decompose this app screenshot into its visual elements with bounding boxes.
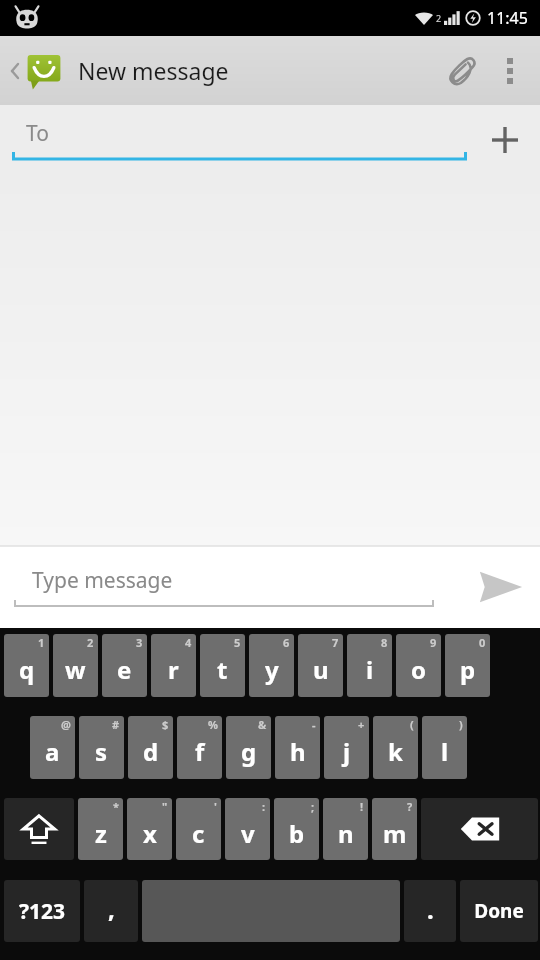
- staticText: j: [343, 735, 351, 768]
- staticText: v: [241, 817, 255, 850]
- button[interactable]: l: [422, 716, 467, 779]
- staticText: &: [258, 717, 267, 732]
- staticText: m: [383, 817, 407, 850]
- staticText: .: [427, 893, 434, 926]
- staticText: 4: [185, 635, 192, 650]
- button[interactable]: o: [396, 634, 441, 697]
- button[interactable]: i: [347, 634, 392, 697]
- staticText: #: [112, 717, 120, 732]
- button[interactable]: a: [30, 716, 75, 779]
- staticText: To: [26, 119, 49, 148]
- button[interactable]: w: [53, 634, 98, 697]
- staticText: n: [338, 817, 354, 850]
- staticText: 5: [234, 635, 241, 650]
- button[interactable]: y: [249, 634, 294, 697]
- button[interactable]: d: [128, 716, 173, 779]
- button[interactable]: c: [176, 798, 221, 860]
- staticText: @: [61, 717, 71, 732]
- button[interactable]: r: [151, 634, 196, 697]
- staticText: l: [441, 735, 449, 768]
- staticText: ?123: [19, 897, 66, 926]
- staticText: 7: [332, 635, 339, 650]
- button[interactable]: x: [127, 798, 172, 860]
- button[interactable]: t: [200, 634, 245, 697]
- staticText: ;: [311, 799, 315, 814]
- button[interactable]: Add recipient: [470, 105, 540, 175]
- button[interactable]: e: [102, 634, 147, 697]
- staticText: k: [388, 735, 403, 768]
- staticText: x: [143, 817, 157, 850]
- staticText: g: [241, 735, 257, 768]
- staticText: *: [113, 799, 119, 814]
- staticText: %: [208, 717, 218, 732]
- staticText: f: [195, 735, 205, 768]
- staticText: a: [45, 735, 60, 768]
- staticText: -: [312, 717, 316, 732]
- button[interactable]: ?123: [4, 880, 80, 942]
- staticText: New message: [78, 55, 229, 86]
- staticText: 2: [436, 12, 442, 24]
- staticText: 6: [283, 635, 290, 650]
- staticText: s: [95, 735, 108, 768]
- button[interactable]: z: [78, 798, 123, 860]
- staticText: y: [265, 653, 279, 686]
- staticText: r: [168, 653, 179, 686]
- button[interactable]: Send: [462, 546, 540, 628]
- staticText: Done: [474, 898, 524, 924]
- button[interactable]: k: [373, 716, 418, 779]
- staticText: z: [95, 817, 107, 850]
- button[interactable]: Shift: [4, 798, 74, 860]
- staticText: 8: [381, 635, 388, 650]
- button[interactable]: More options: [490, 36, 530, 105]
- staticText: 3: [136, 635, 143, 650]
- staticText: :: [262, 799, 266, 814]
- staticText: b: [289, 817, 305, 850]
- button[interactable]: m: [372, 798, 417, 860]
- button[interactable]: j: [324, 716, 369, 779]
- staticText: w: [65, 653, 86, 686]
- staticText: 0: [479, 635, 486, 650]
- button[interactable]: Backspace: [421, 798, 538, 860]
- staticText: ): [459, 717, 463, 732]
- staticText: u: [313, 653, 329, 686]
- button[interactable]: q: [4, 634, 49, 697]
- button[interactable]: h: [275, 716, 320, 779]
- staticText: +: [358, 717, 365, 732]
- button[interactable]: Type message: [14, 566, 434, 609]
- button[interactable]: Done: [460, 880, 538, 942]
- staticText: $: [162, 717, 169, 732]
- button[interactable]: To: [12, 119, 467, 162]
- button[interactable]: v: [225, 798, 270, 860]
- button[interactable]: p: [445, 634, 490, 697]
- button[interactable]: Attach: [434, 36, 490, 105]
- staticText: d: [143, 735, 159, 768]
- staticText: o: [411, 653, 426, 686]
- staticText: ,: [108, 892, 115, 925]
- button[interactable]: b: [274, 798, 319, 860]
- staticText: (: [410, 717, 414, 732]
- staticText: q: [19, 653, 35, 686]
- staticText: !: [360, 799, 364, 814]
- button[interactable]: ,: [84, 880, 138, 942]
- staticText: 9: [430, 635, 437, 650]
- staticText: h: [290, 735, 306, 768]
- staticText: i: [366, 653, 374, 686]
- staticText: ?: [407, 799, 413, 814]
- staticText: Type message: [32, 566, 173, 595]
- staticText: e: [117, 653, 132, 686]
- staticText: 1: [38, 635, 45, 650]
- button[interactable]: u: [298, 634, 343, 697]
- staticText: ": [162, 799, 168, 814]
- staticText: ': [214, 799, 217, 814]
- button[interactable]: f: [177, 716, 222, 779]
- button[interactable]: Navigate up: [6, 51, 68, 91]
- staticText: t: [217, 653, 228, 686]
- staticText: 2: [87, 635, 94, 650]
- staticText: 11:45: [487, 7, 528, 29]
- button[interactable]: g: [226, 716, 271, 779]
- staticText: p: [460, 653, 476, 686]
- button[interactable]: .: [404, 880, 456, 942]
- button[interactable]: n: [323, 798, 368, 860]
- button[interactable]: s: [79, 716, 124, 779]
